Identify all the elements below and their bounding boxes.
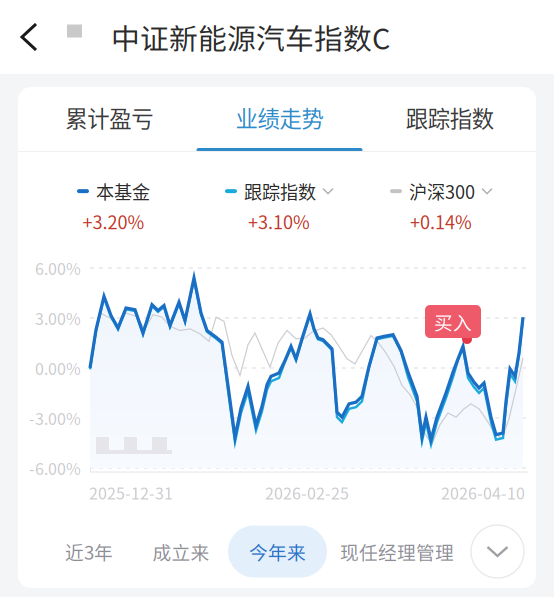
staticText: 0.00% <box>35 356 81 380</box>
staticText: 6.00% <box>35 256 81 280</box>
staticText: +0.14% <box>410 208 472 235</box>
staticText: 2026-02-25 <box>265 481 349 504</box>
staticText: 2026-04-10 <box>441 481 525 504</box>
staticText: 本基金 <box>96 178 150 204</box>
staticText: 3.00% <box>35 306 81 330</box>
staticText: 2025-12-31 <box>89 481 173 504</box>
staticText: 累计盈亏 <box>65 101 153 134</box>
staticText: 近3年 <box>65 538 113 565</box>
staticText: 中证新能源汽车指数C <box>111 16 390 58</box>
staticText: 现任经理管理 <box>340 538 454 565</box>
button[interactable]: 累计盈亏 <box>24 87 194 152</box>
button[interactable]: Back <box>0 0 67 74</box>
staticText: 跟踪指数 <box>244 178 316 204</box>
button[interactable]: More periods <box>471 525 524 578</box>
staticText: 今年来 <box>249 538 306 565</box>
button[interactable]: 现任经理管理 <box>327 525 460 577</box>
staticText: 成立来 <box>152 538 209 565</box>
staticText: 买入 <box>434 308 472 335</box>
button[interactable]: 成立来 <box>134 525 228 577</box>
staticText: +3.10% <box>248 208 310 235</box>
staticText: 业绩走势 <box>235 101 323 134</box>
button[interactable]: 今年来 <box>228 525 327 577</box>
button[interactable]: 跟踪指数 <box>365 87 535 152</box>
staticText: -6.00% <box>29 456 81 480</box>
staticText: 沪深300 <box>409 178 475 204</box>
button[interactable]: 业绩走势 <box>194 87 365 152</box>
staticText: +3.20% <box>82 208 144 235</box>
staticText: -3.00% <box>29 406 81 430</box>
staticText: 跟踪指数 <box>406 101 494 134</box>
button[interactable]: 近3年 <box>44 525 134 577</box>
